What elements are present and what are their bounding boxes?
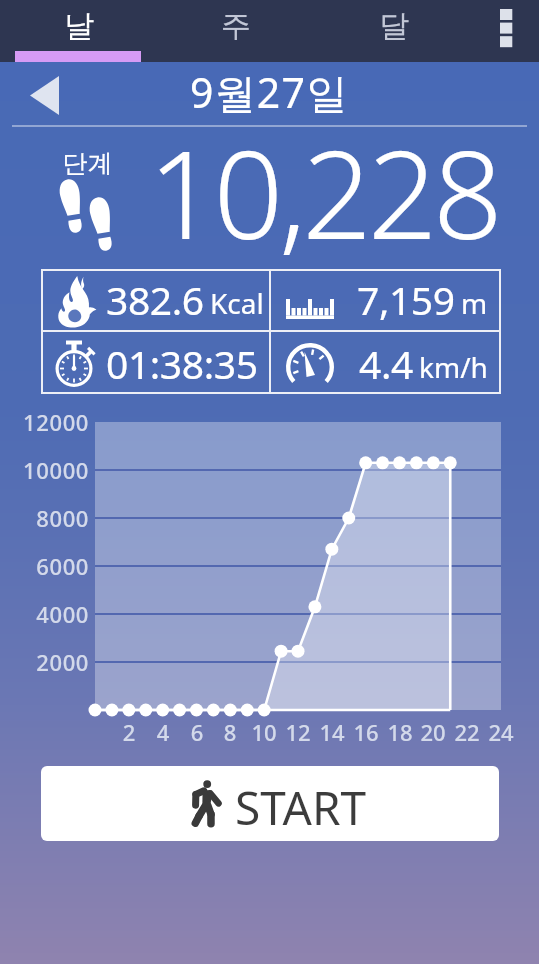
button[interactable]: More options	[473, 0, 539, 62]
staticText: 10000	[0, 455, 89, 485]
button[interactable]: 달	[315, 0, 473, 62]
staticText: 4	[143, 717, 183, 747]
button[interactable]: 4.4	[271, 332, 501, 394]
button[interactable]: 382.6	[41, 269, 269, 330]
staticText: START	[235, 776, 367, 839]
staticText: 18	[380, 717, 420, 747]
staticText: 20	[413, 717, 453, 747]
staticText: km/h	[419, 348, 488, 386]
staticText: 9월27일	[190, 64, 349, 120]
staticText: Kcal	[210, 284, 264, 322]
staticText: 8000	[0, 503, 89, 533]
staticText: 16	[346, 717, 386, 747]
button[interactable]: 01:38:35	[41, 332, 269, 394]
staticText: 01:38:35	[106, 337, 258, 390]
staticText: 8	[210, 717, 250, 747]
staticText: 22	[447, 717, 487, 747]
staticText: 4000	[0, 599, 89, 629]
staticText: 6	[177, 717, 217, 747]
button[interactable]: Previous day	[12, 63, 76, 127]
staticText: 날	[64, 7, 94, 45]
staticText: 단계	[62, 148, 113, 179]
staticText: 2000	[0, 647, 89, 677]
staticText: m	[461, 284, 488, 322]
staticText: 12000	[0, 407, 89, 437]
staticText: 24	[481, 717, 521, 747]
staticText: 12	[278, 717, 318, 747]
staticText: 달	[379, 7, 409, 45]
staticText: 382.6	[106, 273, 204, 326]
button[interactable]: START	[41, 766, 499, 841]
staticText: 10,228	[148, 109, 499, 275]
button[interactable]: 날	[0, 0, 157, 62]
staticText: 4.4	[359, 337, 413, 390]
staticText: 10	[244, 717, 284, 747]
staticText: 주	[221, 7, 251, 45]
staticText: 7,159	[357, 273, 455, 326]
button[interactable]: 7,159	[271, 269, 501, 330]
staticText: 6000	[0, 551, 89, 581]
button[interactable]: 주	[157, 0, 315, 62]
staticText: 2	[109, 717, 149, 747]
staticText: 14	[312, 717, 352, 747]
